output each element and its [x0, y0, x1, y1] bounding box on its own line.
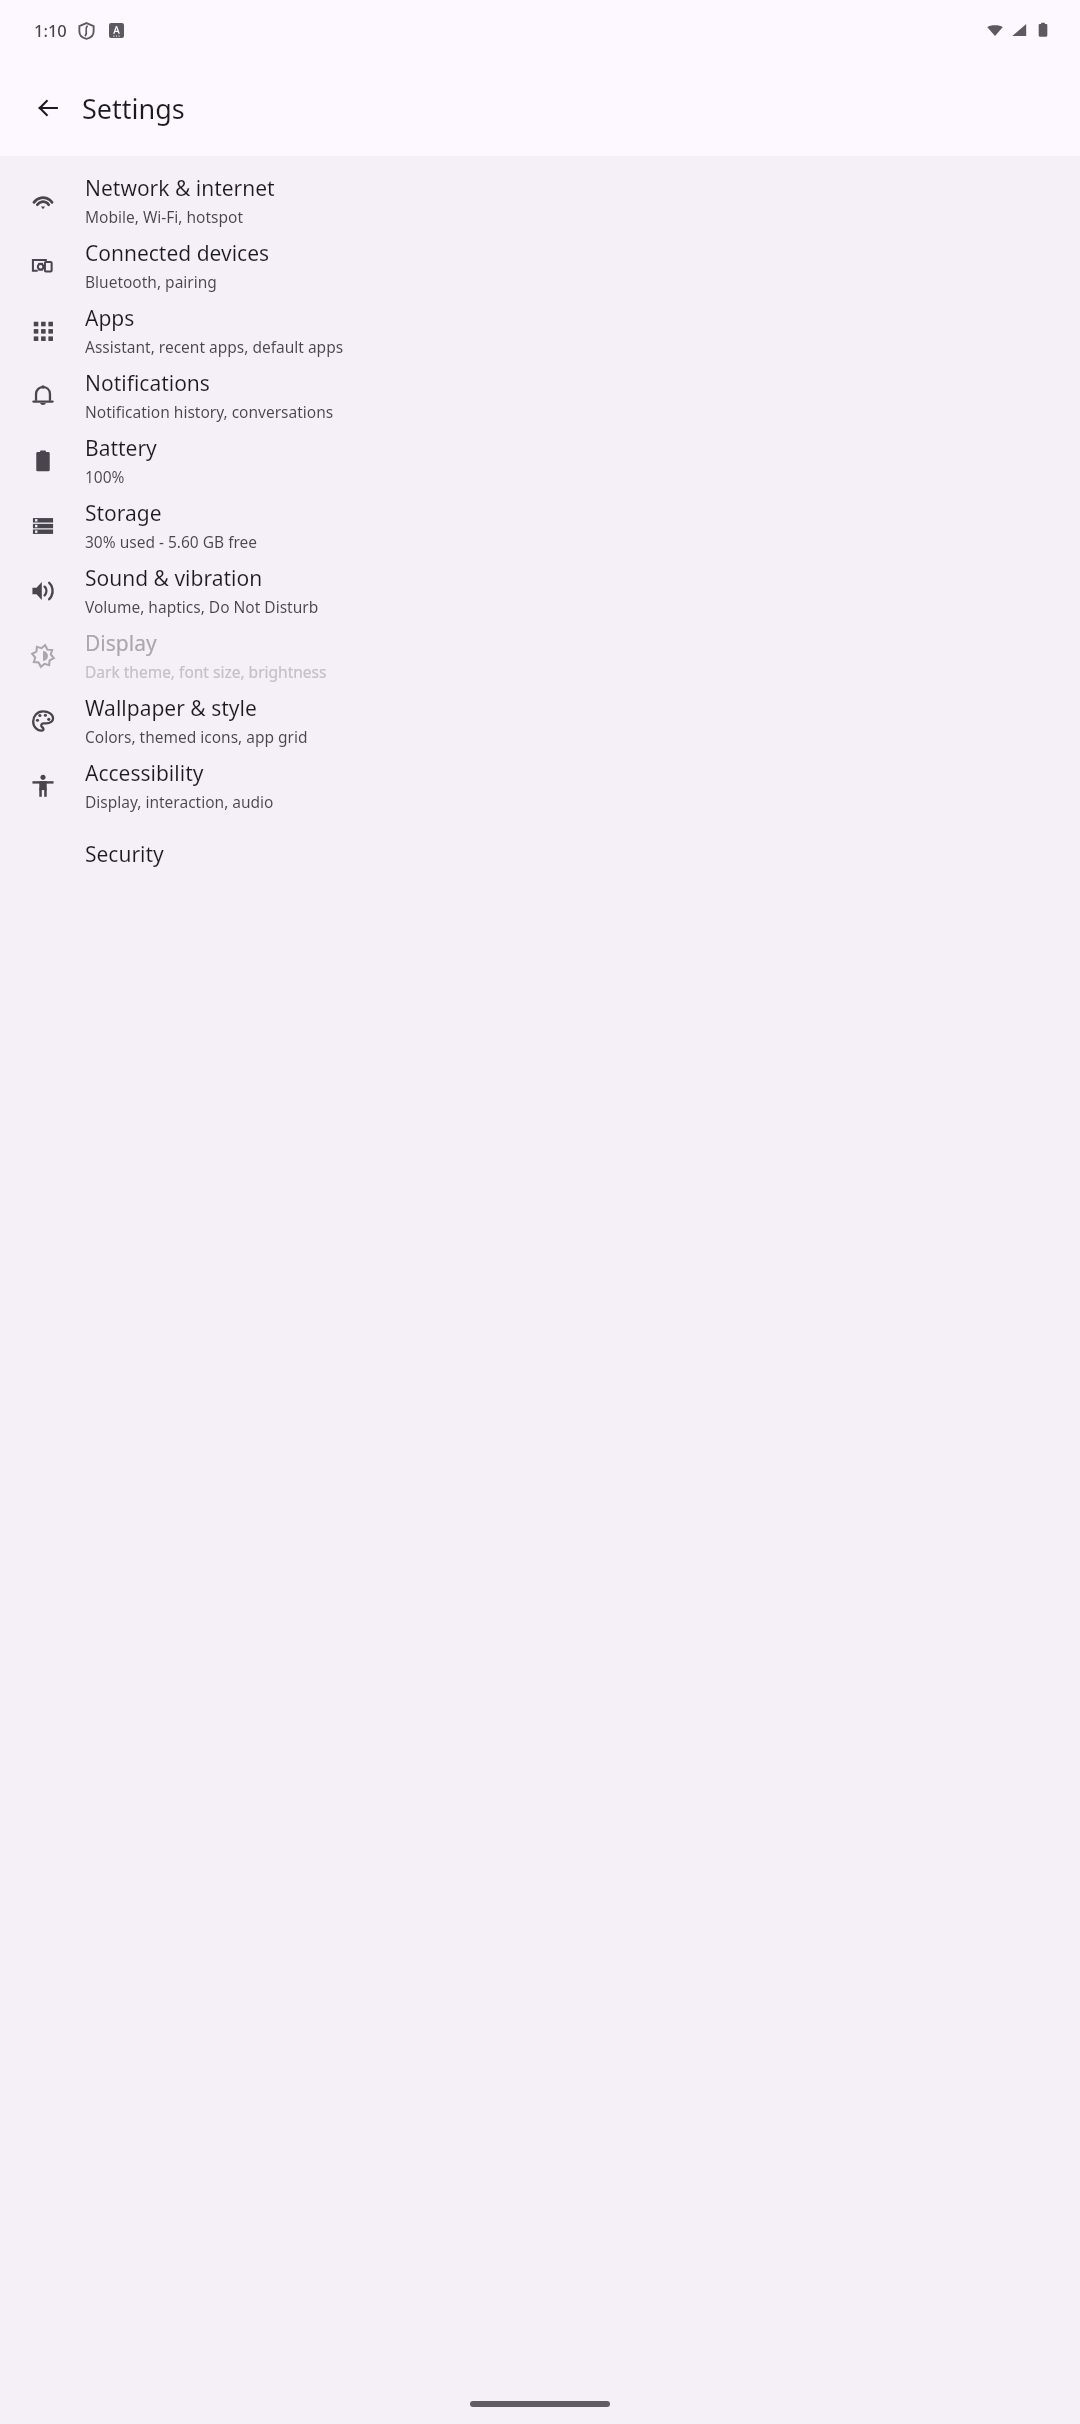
button[interactable]: Storage — [0, 493, 1080, 558]
staticText: Assistant, recent apps, default apps — [85, 336, 344, 357]
button[interactable]: Network & internet — [0, 168, 1080, 233]
button[interactable]: Accessibility — [0, 753, 1080, 818]
staticText: Sound & vibration — [85, 564, 263, 593]
staticText: Bluetooth, pairing — [85, 271, 217, 292]
button[interactable]: Notifications — [0, 363, 1080, 428]
staticText: 100% — [85, 466, 125, 487]
staticText: Wallpaper & style — [85, 694, 257, 723]
button[interactable]: Sound & vibration — [0, 558, 1080, 623]
button[interactable]: Display — [0, 623, 1080, 688]
staticText: Security — [85, 840, 164, 869]
staticText: Display, interaction, audio — [85, 791, 274, 812]
staticText: Connected devices — [85, 239, 270, 268]
button[interactable]: Security — [0, 818, 1080, 882]
staticText: 1:10 — [34, 19, 67, 41]
staticText: Storage — [85, 499, 162, 528]
button[interactable]: Battery — [0, 428, 1080, 493]
button[interactable]: Apps — [0, 298, 1080, 363]
staticText: Dark theme, font size, brightness — [85, 661, 327, 682]
staticText: Accessibility — [85, 759, 204, 788]
button[interactable]: Back — [24, 84, 72, 132]
staticText: Settings — [82, 90, 185, 127]
button[interactable]: Wallpaper & style — [0, 688, 1080, 753]
staticText: Mobile, Wi-Fi, hotspot — [85, 206, 244, 227]
staticText: Volume, haptics, Do Not Disturb — [85, 596, 319, 617]
staticText: Notification history, conversations — [85, 401, 334, 422]
staticText: 30% used - 5.60 GB free — [85, 531, 258, 552]
staticText: Battery — [85, 434, 157, 463]
staticText: Colors, themed icons, app grid — [85, 726, 308, 747]
staticText: Display — [85, 629, 157, 658]
staticText: Apps — [85, 304, 135, 333]
button[interactable]: Connected devices — [0, 233, 1080, 298]
staticText: Network & internet — [85, 174, 275, 203]
staticText: Notifications — [85, 369, 210, 398]
